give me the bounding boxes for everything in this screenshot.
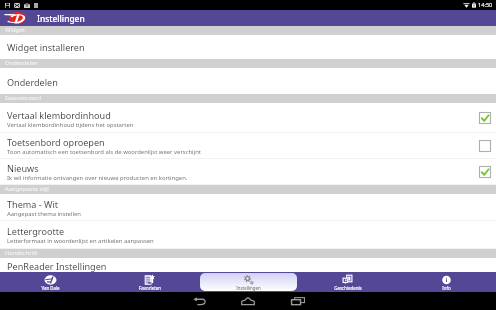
button[interactable]: Back — [186, 292, 212, 310]
button[interactable]: PenReader Instellingen — [0, 258, 496, 272]
staticText: Ik wil informatie ontvangen over nieuwe … — [7, 174, 188, 182]
button[interactable]: Favorieten — [101, 273, 198, 291]
staticText: Vertaal klembordinhoud tijdens het opsta… — [7, 121, 134, 129]
button[interactable]: Lettergrootte — [0, 221, 496, 249]
staticText: Onderdelen — [5, 59, 38, 67]
staticText: Info — [442, 285, 451, 291]
staticText: PenReader Instellingen — [7, 260, 107, 272]
button[interactable]: Van Dale — [1, 273, 99, 291]
staticText: Geavanceerd — [5, 94, 42, 102]
button[interactable]: Toetsenbord oproepen — [0, 133, 496, 159]
staticText: Toon automatisch een toetsenbord als de … — [7, 148, 201, 156]
staticText: Onderdelen — [7, 76, 58, 88]
staticText: Aangepaste stijl — [5, 185, 49, 193]
staticText: Handschrift — [5, 249, 38, 257]
button[interactable]: Nieuws — [0, 159, 496, 185]
staticText: Instellingen — [236, 285, 261, 291]
button[interactable]: Widget installeren — [0, 35, 496, 59]
staticText: Vertaal klembordinhoud — [7, 109, 111, 121]
staticText: Geschiedenis — [334, 285, 362, 291]
staticText: Lettergrootte — [7, 225, 65, 237]
button[interactable]: Instellingen — [200, 273, 297, 291]
staticText: Aangepast thema instellen — [7, 210, 81, 218]
button[interactable]: Vertaal klembordinhoud — [0, 103, 496, 133]
staticText: Van Dale — [41, 285, 60, 291]
button[interactable]: Recent apps — [285, 292, 311, 310]
button[interactable]: Home — [235, 292, 261, 310]
staticText: Toetsenbord oproepen — [7, 136, 105, 148]
staticText: 14:50 — [478, 1, 493, 9]
staticText: Nieuws — [7, 162, 39, 174]
button[interactable]: Onderdelen — [0, 68, 496, 94]
staticText: Favorieten — [139, 285, 161, 291]
button[interactable]: Info — [398, 273, 495, 291]
staticText: Widget installeren — [7, 41, 85, 53]
button[interactable]: Thema - Wit — [0, 194, 496, 221]
staticText: Widget — [5, 26, 25, 34]
button[interactable]: Geschiedenis — [299, 273, 396, 291]
staticText: Instellingen — [37, 13, 85, 24]
staticText: Thema - Wit — [7, 198, 59, 210]
staticText: Letterformaat in woordenlijst en artikel… — [7, 237, 154, 245]
